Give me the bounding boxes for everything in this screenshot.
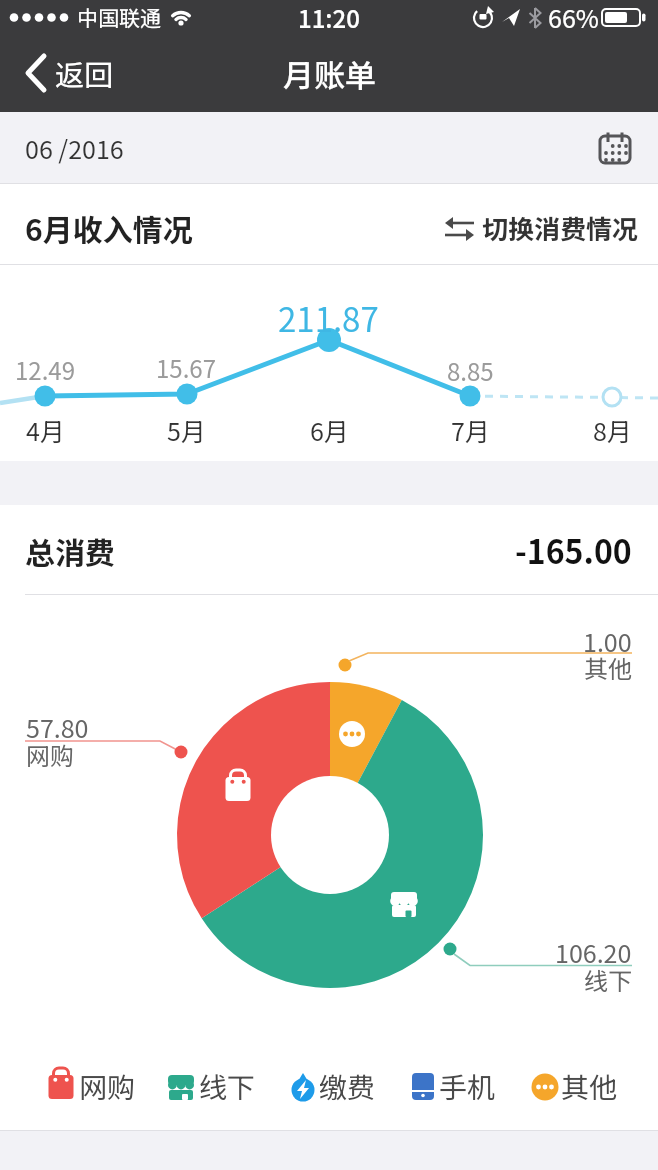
staticText: 总消费 <box>25 529 115 572</box>
button[interactable] <box>20 50 120 96</box>
staticText: 其他 <box>584 650 632 685</box>
staticText: 06 /2016 <box>25 130 124 166</box>
staticText: -165.00 <box>515 527 632 571</box>
staticText: 返回 <box>55 52 114 94</box>
staticText: 12.49 <box>15 352 75 387</box>
button[interactable]: 06 /2016 <box>0 112 658 183</box>
staticText: 8.85 <box>447 353 494 388</box>
button[interactable] <box>526 1040 658 1130</box>
staticText: 7月 <box>451 412 490 448</box>
button[interactable] <box>0 1040 131 1130</box>
button[interactable] <box>430 202 658 252</box>
staticText: 106.20 <box>555 934 632 970</box>
staticText: 切换消费情况 <box>482 209 639 247</box>
staticText: 月账单 <box>283 51 376 95</box>
staticText: 11:20 <box>298 0 360 35</box>
staticText: 缴费 <box>319 1066 376 1107</box>
button[interactable] <box>394 1040 526 1130</box>
staticText: 1.00 <box>583 623 632 659</box>
staticText: 网购 <box>26 737 74 772</box>
staticText: 57.80 <box>26 709 89 745</box>
staticText: 其他 <box>561 1066 618 1107</box>
button[interactable] <box>131 1040 262 1130</box>
staticText: 211.87 <box>278 294 379 338</box>
staticText: 5月 <box>167 412 206 448</box>
staticText: 中国联通 <box>77 2 161 32</box>
staticText: 8月 <box>593 412 632 448</box>
staticText: 4月 <box>26 412 65 448</box>
staticText: 线下 <box>199 1066 256 1107</box>
staticText: 15.67 <box>156 350 216 385</box>
staticText: 线下 <box>584 962 632 997</box>
staticText: 手机 <box>439 1066 496 1107</box>
staticText: 网购 <box>79 1066 136 1107</box>
staticText: 6月 <box>310 412 349 448</box>
staticText: 6月收入情况 <box>25 206 193 249</box>
button[interactable] <box>262 1040 394 1130</box>
staticText: 66% <box>548 0 599 35</box>
